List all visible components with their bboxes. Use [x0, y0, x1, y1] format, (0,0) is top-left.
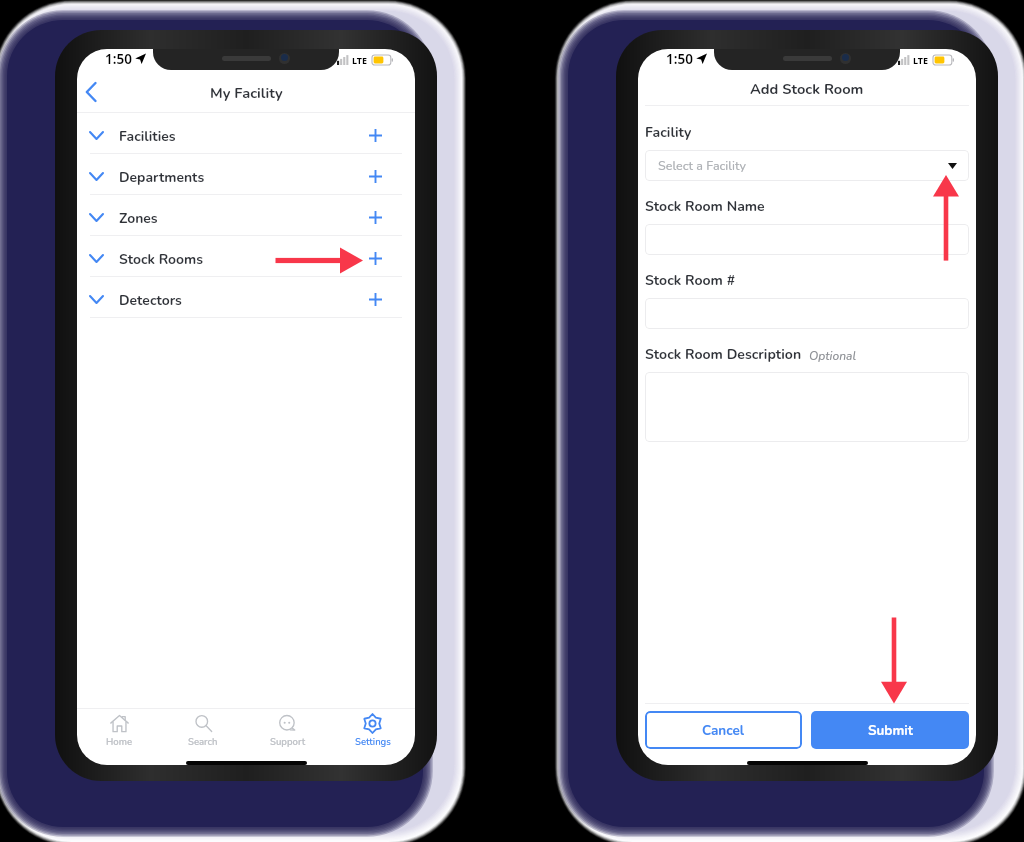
staticText: Stock Room Name: [645, 197, 765, 216]
staticText: Support: [270, 735, 306, 748]
button[interactable]: Detectors: [77, 277, 415, 317]
button[interactable]: Zones: [77, 195, 415, 235]
staticText: Detectors: [119, 291, 182, 310]
staticText: Optional: [809, 348, 857, 364]
staticText: LTE: [352, 54, 368, 66]
staticText: My Facility: [210, 83, 283, 103]
staticText: Search: [188, 735, 218, 748]
button[interactable]: [645, 372, 969, 442]
staticText: Facility: [645, 123, 692, 142]
staticText: Zones: [119, 209, 158, 228]
button[interactable]: Departments: [77, 154, 415, 194]
staticText: Home: [106, 735, 132, 748]
staticText: Add Stock Room: [750, 79, 864, 99]
button[interactable]: Add Facilities: [359, 117, 392, 150]
staticText: Submit: [868, 721, 913, 739]
staticText: Settings: [355, 735, 391, 748]
staticText: Departments: [119, 168, 205, 187]
button[interactable]: Facilities: [77, 113, 415, 153]
button[interactable]: [645, 224, 969, 255]
button[interactable]: Home: [77, 709, 161, 749]
staticText: Select a Facility: [658, 157, 747, 174]
staticText: 1:50: [105, 50, 132, 68]
staticText: Stock Room Description: [645, 345, 802, 364]
button[interactable]: Settings: [330, 709, 415, 749]
button[interactable]: Add Detectors: [359, 281, 392, 314]
staticText: Stock Rooms: [119, 250, 204, 269]
button[interactable]: [645, 298, 969, 329]
button[interactable]: Add Stock Rooms: [359, 240, 392, 273]
button[interactable]: Cancel: [645, 711, 802, 749]
button[interactable]: Add Zones: [359, 199, 392, 232]
button[interactable]: Add Departments: [359, 158, 392, 191]
button[interactable]: Support: [245, 709, 330, 749]
staticText: Cancel: [702, 721, 745, 739]
staticText: 1:50: [666, 50, 693, 68]
button[interactable]: Select a Facility: [645, 150, 969, 181]
staticText: Stock Room #: [645, 271, 736, 290]
button[interactable]: Back: [77, 78, 105, 106]
staticText: LTE: [913, 54, 929, 66]
button[interactable]: Submit: [811, 711, 969, 749]
staticText: Facilities: [119, 127, 176, 146]
button[interactable]: Stock Rooms: [77, 236, 415, 276]
button[interactable]: Search: [161, 709, 245, 749]
